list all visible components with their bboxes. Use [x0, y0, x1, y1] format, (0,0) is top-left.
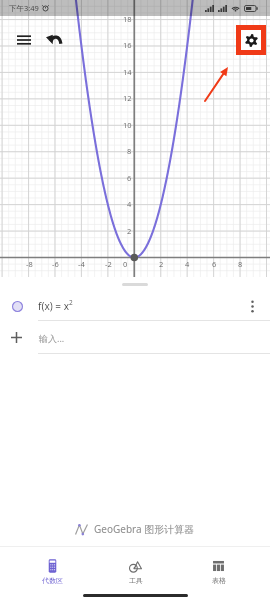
button[interactable]: 代数区 [10, 547, 94, 588]
staticText: 8 [238, 259, 243, 269]
staticText: 16 [123, 40, 132, 50]
staticText: 输入... [39, 332, 65, 344]
button[interactable]: 输入... [0, 321, 270, 354]
staticText: 4 [185, 259, 190, 269]
staticText: 2 [159, 259, 164, 269]
staticText: GeoGebra 图形计算器 [94, 522, 195, 536]
staticText: 6 [212, 259, 217, 269]
staticText: -4 [78, 259, 85, 269]
staticText: f(x) = x [38, 299, 69, 313]
staticText: 8 [127, 146, 132, 156]
staticText: 18 [123, 14, 132, 24]
staticText: 2 [69, 298, 73, 307]
staticText: -8 [26, 259, 33, 269]
staticText: -2 [105, 259, 112, 269]
button[interactable]: Settings [241, 30, 261, 50]
staticText: 工具 [129, 576, 143, 585]
staticText: 14 [123, 67, 132, 77]
staticText: -6 [52, 259, 59, 269]
button[interactable]: 工具 [94, 547, 177, 588]
staticText: 10 [123, 120, 132, 130]
staticText: 6 [127, 173, 132, 183]
staticText: 0 [123, 259, 128, 269]
button[interactable]: More options [238, 292, 266, 320]
staticText: 表格 [212, 576, 226, 585]
staticText: 12 [123, 93, 132, 103]
button[interactable]: f(x) = x [0, 291, 270, 321]
button[interactable]: Undo [42, 26, 66, 50]
button[interactable]: Menu [11, 27, 36, 52]
staticText: 4 [127, 199, 132, 209]
button[interactable]: 表格 [177, 547, 260, 588]
staticText: 下午3:49 [9, 3, 39, 13]
staticText: 2 [127, 226, 132, 236]
staticText: 代数区 [42, 576, 63, 585]
